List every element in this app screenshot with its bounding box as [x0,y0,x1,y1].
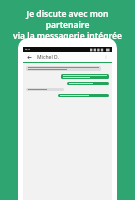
staticText: Michel D. [37,54,59,61]
staticText: Je discute avec mon partenaire via la me… [6,8,129,41]
button[interactable] [61,74,109,79]
button[interactable] [58,94,109,97]
button[interactable] [26,88,64,91]
button[interactable] [67,82,109,85]
button[interactable] [26,66,101,71]
button[interactable]: Retour [26,54,33,61]
button[interactable]: Plus d'options [103,54,109,60]
